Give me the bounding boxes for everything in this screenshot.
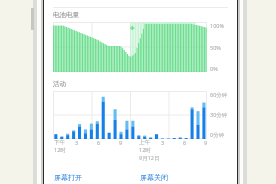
staticText: 50% [210, 44, 221, 51]
staticText: 电池电量 [53, 11, 79, 19]
staticText: 12时 [139, 146, 151, 154]
staticText: 3 [75, 139, 79, 146]
button[interactable] [53, 91, 207, 139]
staticText: 6 [97, 139, 101, 146]
staticText: 9月12日 [139, 154, 160, 161]
staticText: 30分钟 [210, 111, 228, 119]
staticText: 0% [210, 65, 218, 72]
staticText: 6 [183, 139, 187, 146]
staticText: 60分钟 [210, 91, 228, 99]
staticText: 100% [210, 22, 225, 29]
staticText: 屏幕关闭 [140, 173, 168, 182]
staticText: 活动 [53, 80, 66, 88]
staticText: 下午 [54, 139, 65, 146]
staticText: 3 [161, 139, 165, 146]
staticText: 屏幕打开 [54, 173, 82, 182]
staticText: 12时 [54, 146, 66, 154]
button[interactable] [53, 22, 207, 72]
button[interactable]: 屏幕关闭 [140, 173, 227, 182]
staticText: 0分钟 [210, 131, 225, 139]
staticText: 上午 [139, 139, 150, 146]
staticText: 9 [119, 139, 123, 146]
staticText: 9 [204, 139, 208, 146]
button[interactable]: 屏幕打开 [54, 173, 140, 182]
